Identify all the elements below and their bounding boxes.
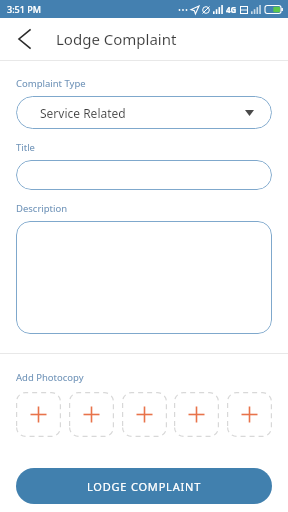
button[interactable]: LODGE COMPLAINT bbox=[16, 468, 272, 504]
staticText: Add Photocopy bbox=[16, 371, 84, 384]
staticText: Title bbox=[16, 141, 35, 154]
button[interactable] bbox=[16, 160, 272, 190]
button[interactable]: Back bbox=[8, 23, 40, 55]
staticText: Description bbox=[16, 202, 68, 215]
button[interactable]: Add photocopy bbox=[69, 392, 114, 437]
button[interactable] bbox=[16, 221, 272, 334]
staticText: 4G bbox=[226, 4, 237, 15]
staticText: Lodge Complaint bbox=[56, 29, 177, 49]
button[interactable]: Add photocopy bbox=[122, 392, 167, 437]
button[interactable]: Add photocopy bbox=[227, 392, 272, 437]
button[interactable]: Add photocopy bbox=[16, 392, 61, 437]
button[interactable]: Service Related bbox=[16, 96, 272, 129]
staticText: Service Related bbox=[40, 105, 126, 121]
staticText: LODGE COMPLAINT bbox=[87, 479, 202, 494]
staticText: 3:51 PM bbox=[7, 3, 41, 15]
staticText: Complaint Type bbox=[16, 77, 86, 90]
button[interactable]: Add photocopy bbox=[174, 392, 219, 437]
